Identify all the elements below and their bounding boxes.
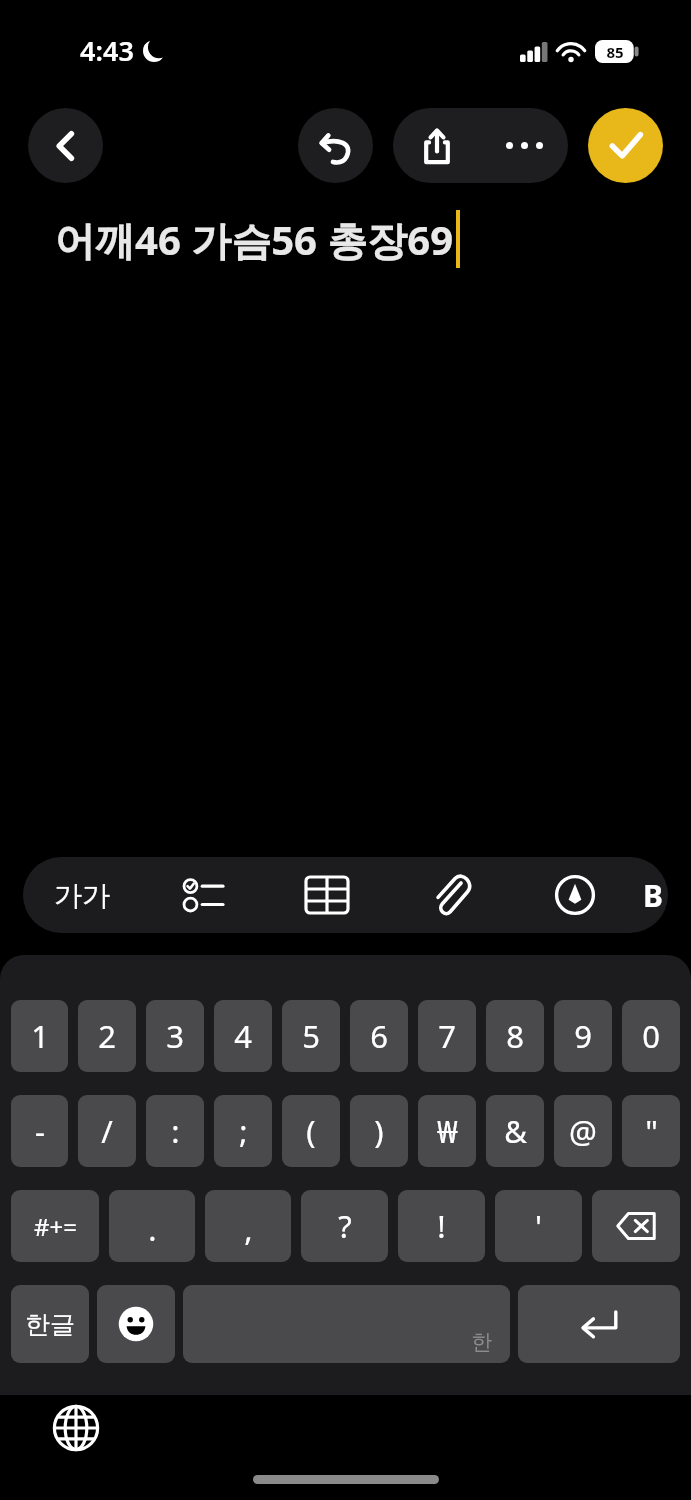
button[interactable]: ;: [214, 1095, 272, 1167]
staticText: ": [645, 1110, 658, 1152]
button[interactable]: @: [554, 1095, 612, 1167]
staticText: /: [101, 1110, 113, 1152]
staticText: -: [35, 1110, 45, 1152]
button[interactable]: Done: [588, 108, 663, 183]
button[interactable]: (: [282, 1095, 340, 1167]
staticText: 85: [606, 42, 624, 62]
staticText: ;: [239, 1110, 248, 1152]
staticText: 1: [31, 1015, 49, 1057]
staticText: 한글: [25, 1309, 75, 1340]
button[interactable]: 0: [622, 1000, 680, 1072]
staticText: 2: [98, 1015, 116, 1057]
button[interactable]: -: [11, 1095, 68, 1167]
button[interactable]: :: [146, 1095, 204, 1167]
staticText: ?: [338, 1205, 352, 1247]
button[interactable]: 2: [78, 1000, 136, 1072]
button[interactable]: 1: [11, 1000, 68, 1072]
staticText: 3: [166, 1015, 184, 1057]
button[interactable]: #+=: [11, 1190, 99, 1262]
button[interactable]: Markup: [513, 857, 637, 933]
staticText: #+=: [34, 1210, 77, 1243]
staticText: @: [569, 1110, 597, 1152]
staticText: 어깨46 가슴56 총장69: [55, 212, 454, 267]
staticText: 4: [234, 1015, 252, 1057]
button[interactable]: Space: [183, 1285, 510, 1363]
button[interactable]: Undo: [298, 108, 373, 183]
staticText: 6: [370, 1015, 388, 1057]
button[interactable]: 3: [146, 1000, 204, 1072]
button[interactable]: Share: [393, 108, 481, 183]
staticText: :: [171, 1110, 180, 1152]
staticText: 7: [438, 1015, 456, 1057]
button[interactable]: 8: [486, 1000, 544, 1072]
staticText: 5: [302, 1015, 320, 1057]
button[interactable]: Text format: [23, 857, 141, 933]
staticText: ,: [244, 1208, 253, 1250]
staticText: 가가: [54, 878, 110, 913]
staticText: ): [374, 1110, 384, 1152]
button[interactable]: &: [486, 1095, 544, 1167]
staticText: 8: [506, 1015, 524, 1057]
button[interactable]: Return: [518, 1285, 680, 1363]
button[interactable]: !: [398, 1190, 485, 1262]
staticText: &: [504, 1110, 527, 1152]
button[interactable]: ,: [205, 1190, 291, 1262]
staticText: B: [643, 875, 663, 916]
button[interactable]: Emoji: [97, 1285, 175, 1363]
button[interactable]: Table: [265, 857, 389, 933]
staticText: (: [306, 1110, 316, 1152]
staticText: 0: [642, 1015, 660, 1057]
button[interactable]: ₩: [418, 1095, 476, 1167]
staticText: ': [535, 1205, 542, 1247]
button[interactable]: 5: [282, 1000, 340, 1072]
button[interactable]: Back: [28, 108, 103, 183]
button[interactable]: 6: [350, 1000, 408, 1072]
button[interactable]: 한글: [11, 1285, 89, 1363]
button[interactable]: Checklist: [141, 857, 265, 933]
button[interactable]: ": [622, 1095, 680, 1167]
button[interactable]: .: [109, 1190, 195, 1262]
staticText: .: [148, 1208, 157, 1250]
button[interactable]: /: [78, 1095, 136, 1167]
staticText: 한: [471, 1329, 492, 1355]
button[interactable]: 9: [554, 1000, 612, 1072]
button[interactable]: Change keyboard: [48, 1400, 104, 1456]
button[interactable]: ': [495, 1190, 582, 1262]
button[interactable]: More options: [481, 108, 568, 183]
staticText: 9: [574, 1015, 592, 1057]
staticText: !: [437, 1205, 446, 1247]
staticText: 4:43: [80, 32, 134, 69]
staticText: ₩: [437, 1110, 458, 1152]
button[interactable]: ?: [301, 1190, 388, 1262]
button[interactable]: ): [350, 1095, 408, 1167]
button[interactable]: 7: [418, 1000, 476, 1072]
button[interactable]: 4: [214, 1000, 272, 1072]
button[interactable]: Backspace: [592, 1190, 680, 1262]
button[interactable]: Attach: [389, 857, 513, 933]
